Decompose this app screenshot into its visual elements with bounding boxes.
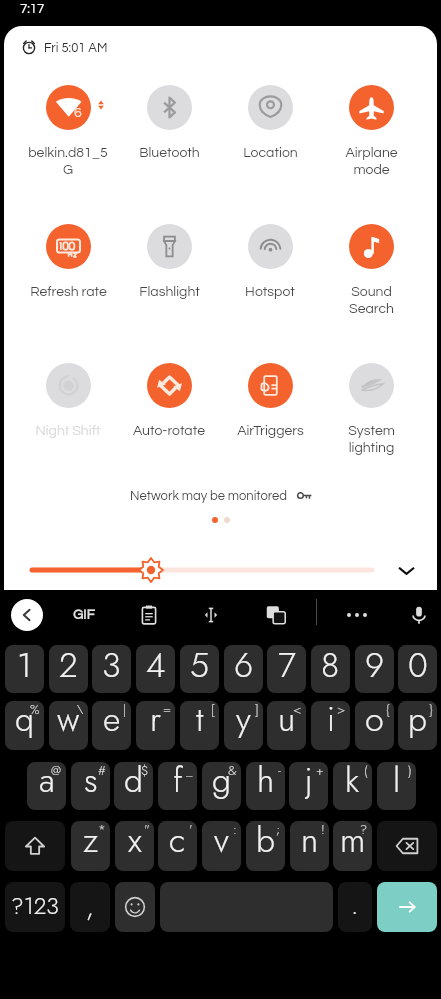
- button[interactable]: Emoji: [115, 882, 155, 932]
- button[interactable]: ,: [70, 882, 110, 932]
- button[interactable]: Systemlighting: [323, 363, 419, 455]
- button[interactable]: 2: [49, 645, 88, 693]
- staticText: h: [257, 762, 275, 804]
- button[interactable]: Airplanemode: [323, 85, 419, 177]
- staticText: $: [141, 762, 149, 780]
- staticText: 6: [74, 106, 82, 120]
- button[interactable]: m: [333, 821, 372, 871]
- staticText: &: [228, 762, 237, 780]
- button[interactable]: Translate: [259, 598, 293, 632]
- button[interactable]: q: [5, 701, 44, 750]
- button[interactable]: More options: [340, 598, 374, 632]
- button[interactable]: Clipboard: [132, 598, 166, 632]
- button[interactable]: r: [136, 701, 175, 750]
- staticText: >: [337, 701, 346, 719]
- button[interactable]: 4: [136, 645, 175, 693]
- staticText: Auto-rotate: [133, 424, 205, 438]
- staticText: Fri 5:01 AM: [44, 41, 108, 54]
- button[interactable]: v: [202, 821, 241, 871]
- button[interactable]: ?123: [5, 882, 65, 932]
- button[interactable]: z: [71, 821, 110, 871]
- button[interactable]: n: [290, 821, 329, 871]
- button[interactable]: w: [49, 701, 88, 750]
- staticText: 8: [321, 645, 340, 689]
- button[interactable]: a: [27, 762, 66, 810]
- button[interactable]: Back: [11, 599, 43, 631]
- staticText: ,: [86, 888, 94, 926]
- button[interactable]: d: [114, 762, 153, 810]
- staticText: w: [57, 701, 80, 744]
- button[interactable]: belkin.d81_5G: [20, 85, 116, 177]
- button[interactable]: 6: [224, 645, 263, 693]
- button[interactable]: Flashlight: [121, 224, 217, 299]
- button[interactable]: Enter: [377, 882, 437, 932]
- button[interactable]: j: [289, 762, 328, 810]
- button[interactable]: 3: [92, 645, 131, 693]
- button[interactable]: c: [158, 821, 197, 871]
- staticText: <: [293, 701, 302, 719]
- staticText: 7: [278, 645, 296, 689]
- staticText: s: [84, 762, 98, 804]
- staticText: ]: [255, 701, 259, 719]
- staticText: v: [214, 821, 229, 865]
- staticText: Network may be monitored: [130, 489, 288, 502]
- staticText: System lighting: [348, 424, 395, 455]
- staticText: z: [83, 821, 99, 865]
- staticText: *: [98, 821, 106, 839]
- button[interactable]: Location: [222, 85, 318, 160]
- staticText: +: [316, 762, 324, 780]
- staticText: n: [301, 821, 319, 865]
- staticText: Night Shift: [35, 424, 101, 438]
- button[interactable]: Auto-rotate: [121, 363, 217, 438]
- button[interactable]: 9: [355, 645, 394, 693]
- staticText: x: [128, 821, 142, 865]
- button[interactable]: f: [158, 762, 197, 810]
- button[interactable]: p: [398, 701, 437, 750]
- button[interactable]: Space: [160, 882, 333, 932]
- staticText: 0: [408, 645, 428, 689]
- button[interactable]: s: [71, 762, 110, 810]
- staticText: m: [340, 821, 366, 865]
- staticText: i: [327, 701, 335, 744]
- staticText: y: [236, 701, 251, 744]
- button[interactable]: SoundSearch: [323, 224, 419, 316]
- button[interactable]: t: [180, 701, 219, 750]
- staticText: {: [386, 701, 390, 719]
- button[interactable]: l: [377, 762, 416, 810]
- button[interactable]: Voice input: [402, 598, 436, 632]
- button[interactable]: o: [355, 701, 394, 750]
- button[interactable]: x: [115, 821, 154, 871]
- button[interactable]: Backspace: [377, 821, 437, 871]
- button[interactable]: 0: [398, 645, 437, 693]
- button[interactable]: GIF: [62, 599, 106, 631]
- button[interactable]: i: [311, 701, 350, 750]
- staticText: %: [30, 701, 40, 719]
- button[interactable]: Shift: [5, 821, 65, 871]
- button[interactable]: Bluetooth: [121, 85, 217, 160]
- button[interactable]: b: [246, 821, 285, 871]
- staticText: :: [233, 821, 237, 839]
- button[interactable]: .: [338, 882, 372, 932]
- button[interactable]: Refresh rate: [20, 224, 116, 299]
- button[interactable]: g: [202, 762, 241, 810]
- button[interactable]: Cursor: [194, 598, 228, 632]
- button[interactable]: u: [267, 701, 306, 750]
- button[interactable]: 1: [5, 645, 44, 693]
- staticText: [: [211, 701, 215, 719]
- button[interactable]: AirTriggers: [222, 363, 318, 438]
- staticText: 9: [365, 645, 385, 689]
- staticText: belkin.d81_5 G: [28, 146, 108, 177]
- button[interactable]: h: [246, 762, 285, 810]
- button[interactable]: 7: [267, 645, 306, 693]
- staticText: 4: [146, 645, 166, 689]
- button[interactable]: e: [92, 701, 131, 750]
- button[interactable]: Hotspot: [222, 224, 318, 299]
- staticText: Hotspot: [245, 285, 295, 299]
- button[interactable]: 8: [311, 645, 350, 693]
- button[interactable]: Night Shift: [20, 363, 116, 438]
- staticText: _: [186, 762, 193, 780]
- button[interactable]: 5: [180, 645, 219, 693]
- staticText: f: [173, 762, 183, 804]
- button[interactable]: k: [333, 762, 372, 810]
- button[interactable]: y: [224, 701, 263, 750]
